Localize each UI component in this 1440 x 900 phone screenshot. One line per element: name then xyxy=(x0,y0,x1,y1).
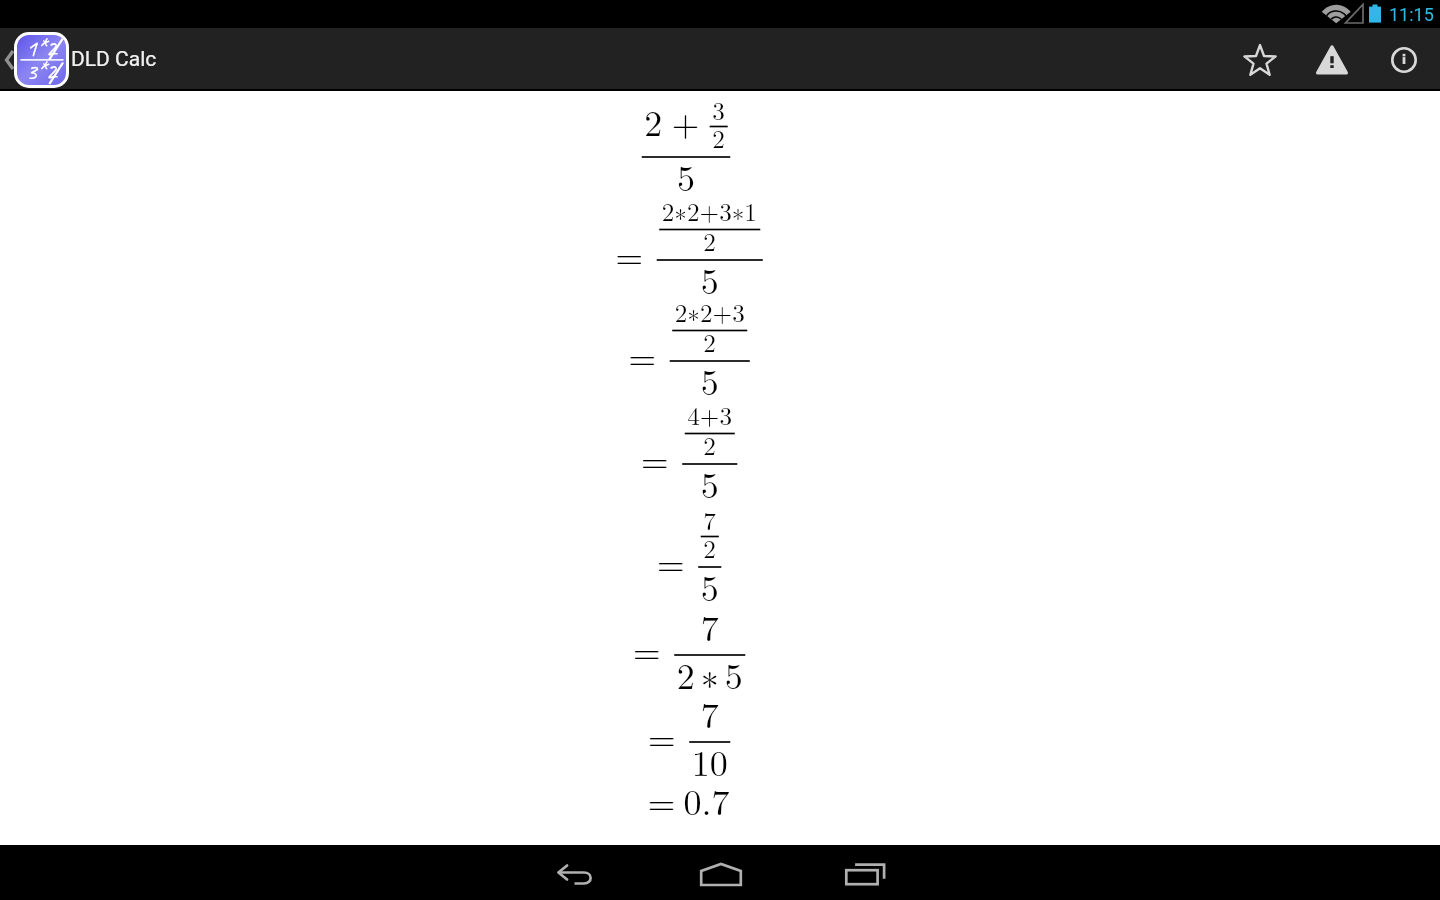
button[interactable]: Home xyxy=(648,845,793,900)
button[interactable]: Back xyxy=(503,845,648,900)
staticText: 11:15 xyxy=(1389,4,1434,25)
button[interactable]: Favourite xyxy=(1224,28,1296,91)
staticText: 3*2 xyxy=(26,56,57,85)
button[interactable]: Navigate up xyxy=(0,28,69,91)
button[interactable]: Report a problem xyxy=(1296,28,1368,91)
staticText: 1*2 xyxy=(26,35,57,63)
button[interactable]: Recent apps xyxy=(793,845,938,900)
button[interactable]: About xyxy=(1368,28,1440,91)
staticText: DLD Calc xyxy=(71,47,157,72)
